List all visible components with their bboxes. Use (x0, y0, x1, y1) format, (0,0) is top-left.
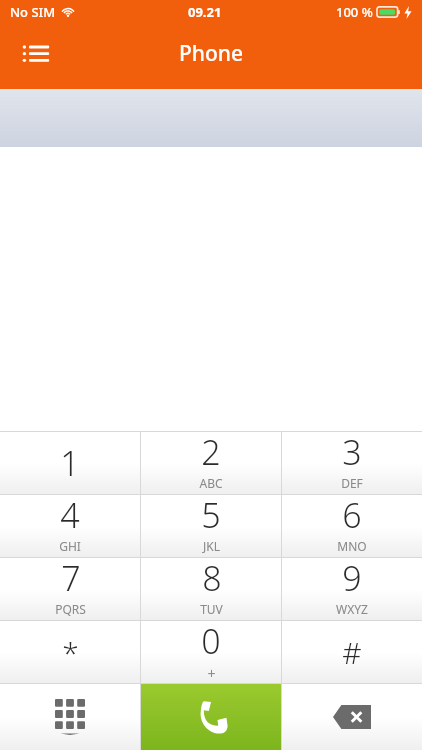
staticText: ABC (199, 475, 223, 491)
button[interactable]: 4 (0, 495, 140, 557)
staticText: No SIM (10, 3, 56, 21)
button[interactable]: Call (141, 684, 281, 750)
staticText: 3 (342, 429, 362, 475)
button[interactable]: Hide keypad (0, 684, 140, 750)
button[interactable]: 9 (282, 558, 422, 620)
staticText: GHI (59, 538, 81, 554)
staticText: 7 (61, 555, 81, 601)
button[interactable]: Menu (14, 32, 58, 76)
staticText: 2 (201, 429, 221, 475)
button[interactable]: Delete (282, 684, 422, 750)
staticText: 9 (342, 555, 362, 601)
staticText: 100 % (336, 3, 373, 21)
staticText: 4 (60, 492, 80, 538)
staticText: TUV (200, 601, 223, 617)
button[interactable]: * (0, 621, 140, 683)
staticText: * (62, 632, 79, 673)
staticText: Phone (179, 39, 244, 68)
button[interactable]: 3 (282, 432, 422, 494)
button[interactable]: 7 (0, 558, 140, 620)
button[interactable]: 2 (141, 432, 281, 494)
staticText: 1 (60, 440, 80, 486)
staticText: WXYZ (336, 601, 368, 617)
staticText: PQRS (55, 601, 86, 617)
staticText: JKL (203, 538, 220, 554)
staticText: + (207, 664, 216, 680)
staticText: MNO (337, 538, 367, 554)
button[interactable]: 5 (141, 495, 281, 557)
staticText: # (342, 632, 362, 673)
button[interactable]: 0 (141, 621, 281, 683)
staticText: 0 (201, 618, 221, 664)
button[interactable]: # (282, 621, 422, 683)
staticText: 09.21 (188, 3, 222, 21)
staticText: 6 (342, 492, 362, 538)
button[interactable]: 6 (282, 495, 422, 557)
button[interactable]: 1 (0, 432, 140, 494)
staticText: 5 (201, 492, 221, 538)
staticText: 8 (202, 555, 222, 601)
staticText: DEF (341, 475, 363, 491)
button[interactable]: 8 (141, 558, 281, 620)
